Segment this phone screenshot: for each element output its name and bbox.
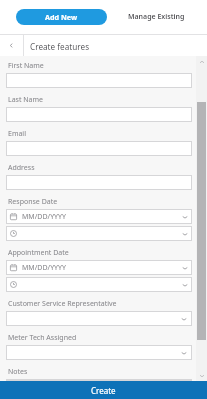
staticText: MM/DD/YYYY — [22, 212, 66, 222]
button[interactable]: Add New — [16, 9, 107, 25]
staticText: Meter Tech Assigned — [8, 333, 77, 343]
staticText: MM/DD/YYYY — [22, 263, 66, 273]
button[interactable] — [6, 345, 192, 360]
staticText: Response Date — [8, 197, 58, 207]
staticText: Email — [8, 129, 26, 139]
staticText: Notes — [8, 367, 28, 377]
staticText: Create — [91, 385, 116, 396]
button[interactable] — [6, 73, 192, 88]
staticText: Add New — [45, 12, 78, 22]
button[interactable] — [6, 277, 192, 292]
button[interactable] — [6, 175, 192, 190]
staticText: Customer Service Representative — [8, 299, 117, 309]
button[interactable]: Scroll down — [196, 370, 207, 381]
button[interactable]: MM/DD/YYYY — [6, 260, 192, 275]
button[interactable]: Manage Existing — [116, 9, 196, 25]
button[interactable] — [6, 311, 192, 326]
button[interactable]: Back — [0, 35, 23, 56]
staticText: Manage Existing — [128, 12, 185, 22]
staticText: Last Name — [8, 95, 44, 105]
button[interactable]: Create — [0, 381, 207, 399]
button[interactable]: Scroll up — [196, 56, 207, 67]
button[interactable]: MM/DD/YYYY — [6, 209, 192, 224]
staticText: Appointment Date — [8, 248, 69, 258]
button[interactable] — [6, 226, 192, 241]
button[interactable] — [6, 141, 192, 156]
staticText: First Name — [8, 61, 44, 71]
staticText: Create features — [30, 41, 90, 52]
button[interactable] — [6, 107, 192, 122]
staticText: Address — [8, 163, 35, 173]
